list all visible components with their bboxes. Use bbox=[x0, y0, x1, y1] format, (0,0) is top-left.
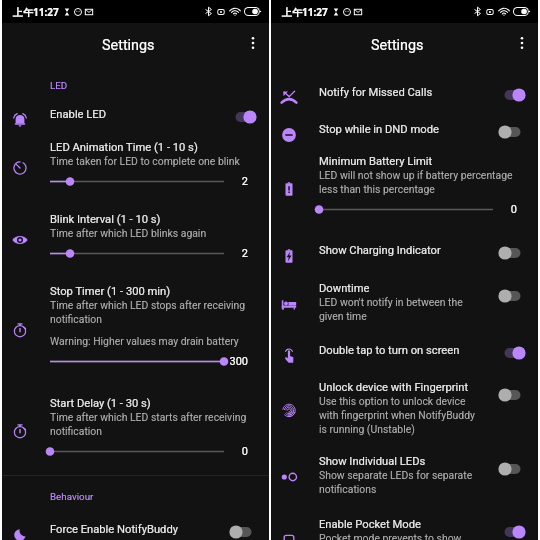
staticText: Use this option to unlock device with fi… bbox=[319, 395, 482, 435]
staticText: Stop while in DND mode bbox=[319, 123, 439, 136]
button[interactable]: Blink Interval (1 - 10 s) bbox=[2, 213, 269, 260]
staticText: Double tap to turn on screen bbox=[319, 344, 460, 357]
button[interactable]: Force Enable NotifyBuddy bbox=[2, 523, 269, 540]
staticText: Show separate LEDs for separate notifica… bbox=[319, 469, 482, 495]
staticText: Blink Interval (1 - 10 s) bbox=[50, 213, 161, 226]
staticText: Start Delay (1 - 30 s) bbox=[50, 397, 151, 410]
staticText: Pocket mode prevents to show LED bbox=[319, 532, 482, 540]
button[interactable]: Minimum Battery Limit bbox=[271, 155, 538, 216]
button[interactable]: Double tap to turn on screen bbox=[271, 344, 538, 366]
staticText: Settings bbox=[102, 37, 155, 54]
staticText: 2 bbox=[224, 175, 248, 188]
staticText: Enable Pocket Mode bbox=[319, 518, 421, 531]
staticText: Stop Timer (1 - 300 min) bbox=[50, 285, 171, 298]
staticText: Downtime bbox=[319, 282, 370, 295]
staticText: 300 bbox=[224, 355, 248, 368]
staticText: Time after which LED blinks again bbox=[50, 227, 207, 239]
staticText: Force Enable NotifyBuddy bbox=[50, 523, 179, 536]
staticText: 0 bbox=[224, 445, 248, 458]
button[interactable]: LED Animation Time (1 - 10 s) bbox=[2, 141, 269, 188]
button[interactable]: Show Individual LEDs bbox=[271, 455, 538, 495]
staticText: Enable LED bbox=[50, 108, 107, 121]
staticText: Behaviour bbox=[50, 491, 94, 502]
button[interactable]: Enable LED bbox=[2, 108, 269, 130]
staticText: LED bbox=[50, 80, 68, 91]
button[interactable]: Notify for Missed Calls bbox=[271, 86, 538, 108]
button[interactable]: Stop while in DND mode bbox=[271, 123, 538, 145]
button[interactable]: More options bbox=[510, 31, 534, 55]
staticText: Time after which LED stops after receivi… bbox=[50, 299, 248, 325]
staticText: LED will not show up if battery percenta… bbox=[319, 169, 517, 195]
staticText: Unlock device with Fingerprint bbox=[319, 381, 469, 394]
button[interactable]: Enable Pocket Mode bbox=[271, 518, 538, 540]
button[interactable]: Start Delay (1 - 30 s) bbox=[2, 397, 269, 458]
staticText: 上午11:27 bbox=[13, 5, 59, 19]
staticText: Minimum Battery Limit bbox=[319, 155, 433, 168]
staticText: 上午11:27 bbox=[282, 5, 328, 19]
button[interactable]: Show Charging Indicator bbox=[271, 244, 538, 266]
button[interactable]: Downtime bbox=[271, 282, 538, 322]
button[interactable]: Unlock device with Fingerprint bbox=[271, 381, 538, 435]
staticText: 0 bbox=[493, 203, 517, 216]
button[interactable]: More options bbox=[241, 31, 265, 55]
staticText: Time taken for LED to complete one blink bbox=[50, 155, 240, 167]
staticText: LED won't notify in between the given ti… bbox=[319, 296, 482, 322]
staticText: Warning: Higher values may drain battery bbox=[50, 335, 239, 347]
staticText: Show Charging Indicator bbox=[319, 244, 441, 257]
staticText: Show Individual LEDs bbox=[319, 455, 426, 468]
staticText: Settings bbox=[371, 37, 424, 54]
staticText: 2 bbox=[224, 247, 248, 260]
staticText: Time after which LED starts after receiv… bbox=[50, 411, 248, 437]
button[interactable]: Stop Timer (1 - 300 min) bbox=[2, 285, 269, 368]
staticText: LED Animation Time (1 - 10 s) bbox=[50, 141, 198, 154]
staticText: Notify for Missed Calls bbox=[319, 86, 433, 99]
